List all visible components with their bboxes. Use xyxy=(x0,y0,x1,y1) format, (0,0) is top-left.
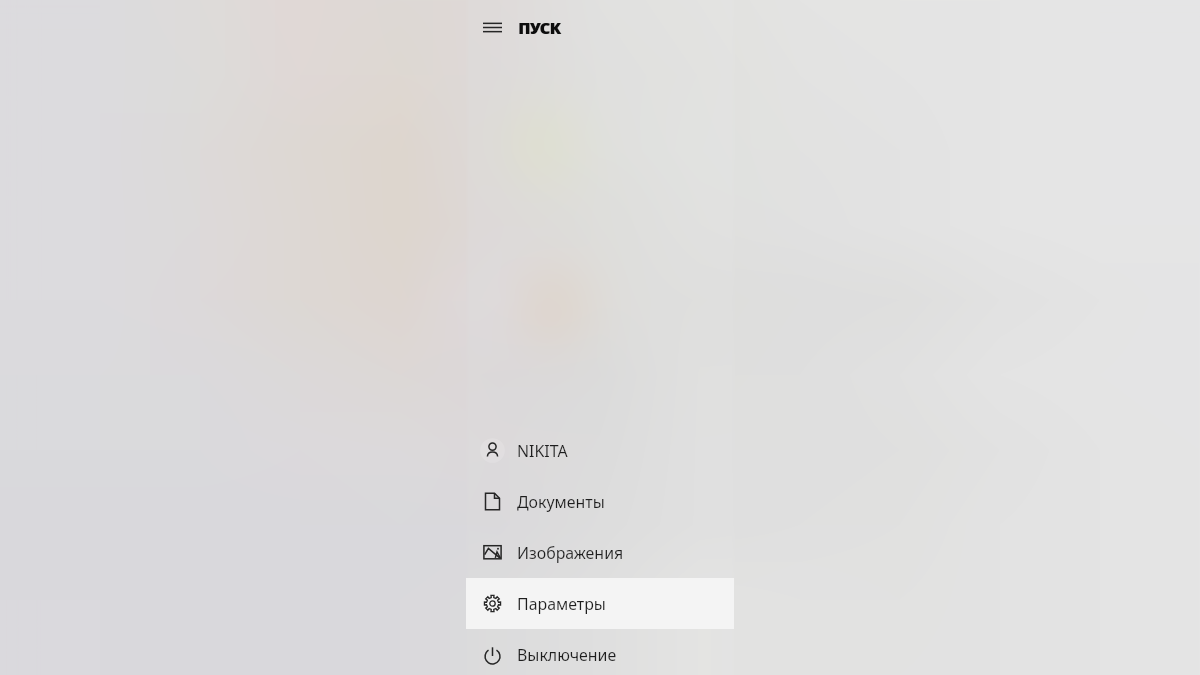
button[interactable]: Параметры xyxy=(466,578,734,629)
staticText: Изображения xyxy=(517,542,624,564)
staticText: Параметры xyxy=(517,593,606,615)
button[interactable]: Выключение xyxy=(466,629,734,675)
button[interactable]: Документы xyxy=(466,476,734,527)
staticText: ПУСК xyxy=(518,17,561,38)
button[interactable]: Menu xyxy=(466,0,734,54)
staticText: Документы xyxy=(517,491,605,513)
staticText: NIKITA xyxy=(517,440,568,462)
staticText: Выключение xyxy=(517,644,617,666)
other: Menu xyxy=(483,18,502,37)
button[interactable]: NIKITA xyxy=(466,425,734,476)
staticText: ПУСК xyxy=(519,17,562,38)
button[interactable]: Изображения xyxy=(466,527,734,578)
